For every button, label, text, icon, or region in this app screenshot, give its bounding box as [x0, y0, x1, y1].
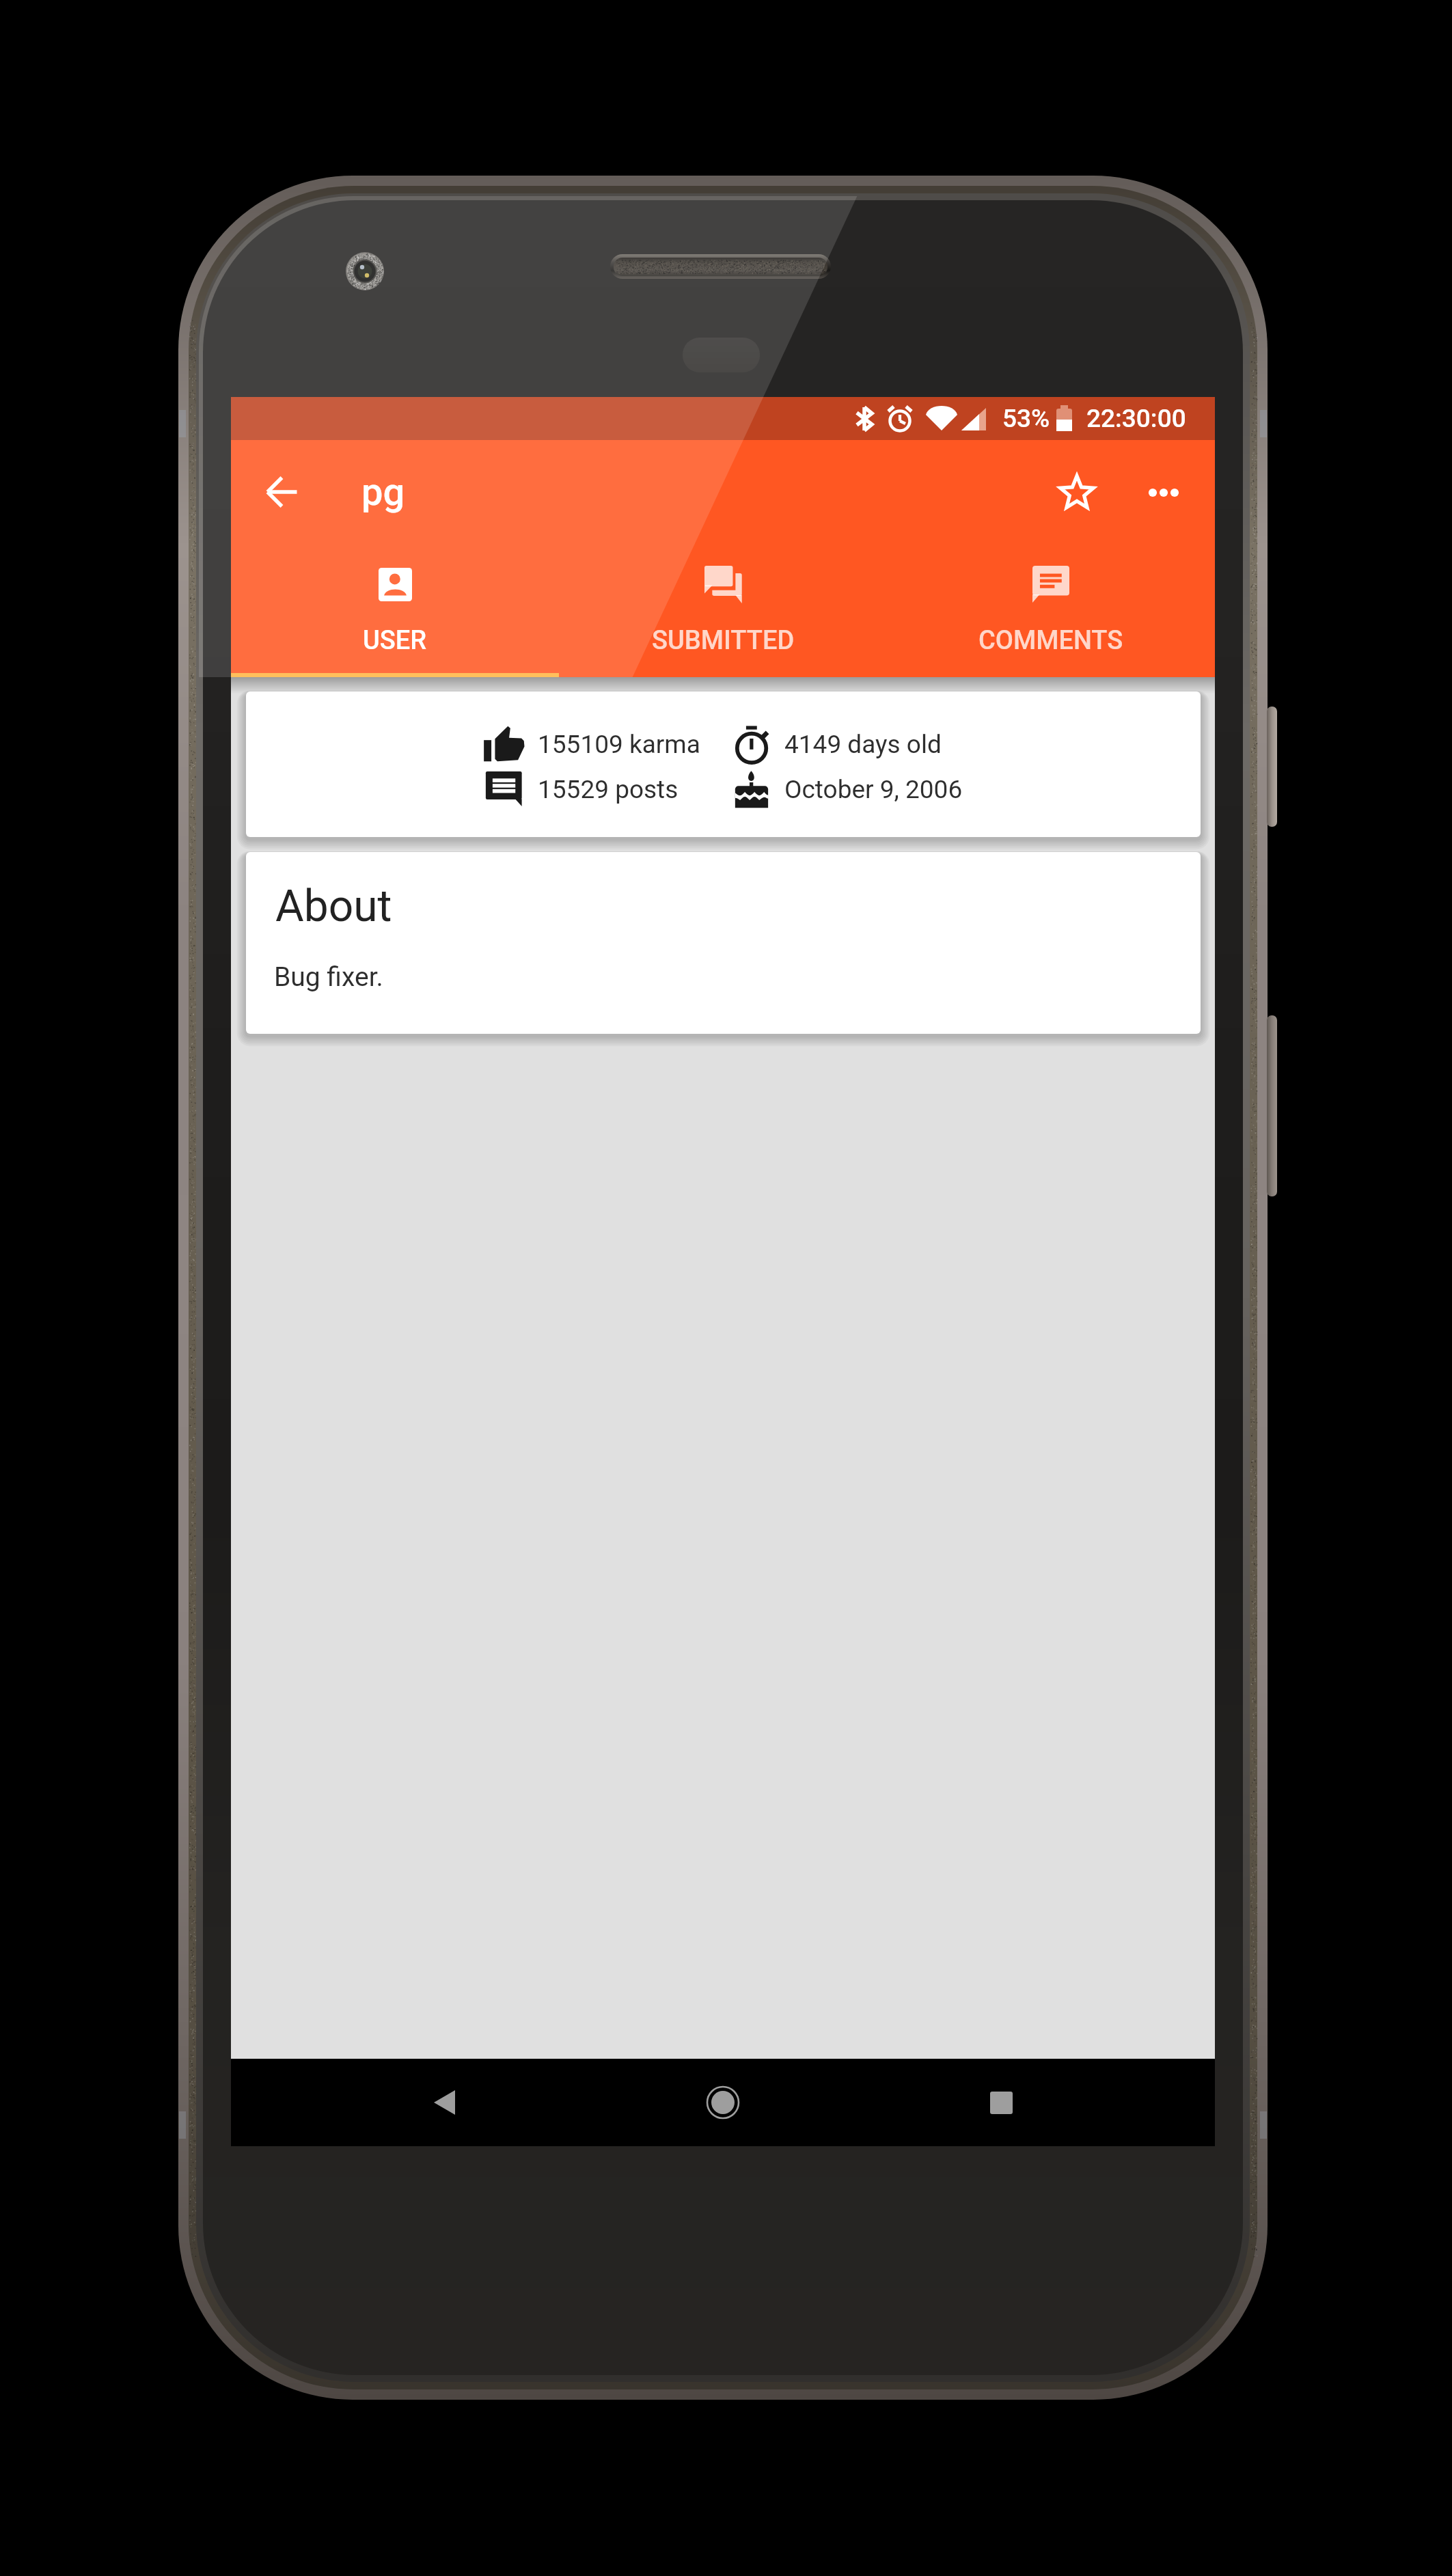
staticText: 4149 days old — [784, 730, 942, 759]
staticText: 155109 karma — [538, 730, 700, 759]
button[interactable]: COMMENTS — [887, 544, 1215, 677]
button[interactable]: 155109 karma — [246, 691, 1201, 837]
button[interactable]: Home — [689, 2068, 757, 2137]
staticText: USER — [363, 625, 427, 656]
staticText: October 9, 2006 — [784, 775, 963, 804]
button[interactable]: Navigate up — [245, 455, 319, 529]
staticText: 22:30:00 — [1086, 404, 1186, 433]
staticText: 15529 posts — [538, 775, 679, 804]
button[interactable]: Recent apps — [967, 2068, 1035, 2137]
staticText: pg — [361, 469, 405, 515]
staticText: COMMENTS — [978, 625, 1123, 656]
button[interactable]: Add to favorites — [1037, 452, 1117, 532]
button[interactable]: SUBMITTED — [559, 544, 887, 677]
staticText: About — [275, 881, 392, 932]
button[interactable]: USER — [231, 544, 559, 677]
staticText: 53% — [1002, 404, 1050, 433]
staticText: SUBMITTED — [652, 625, 795, 656]
staticText: Bug fixer. — [274, 961, 383, 993]
button[interactable]: About — [246, 852, 1201, 1034]
button[interactable]: Back — [410, 2068, 478, 2137]
button[interactable]: More options — [1124, 452, 1203, 532]
